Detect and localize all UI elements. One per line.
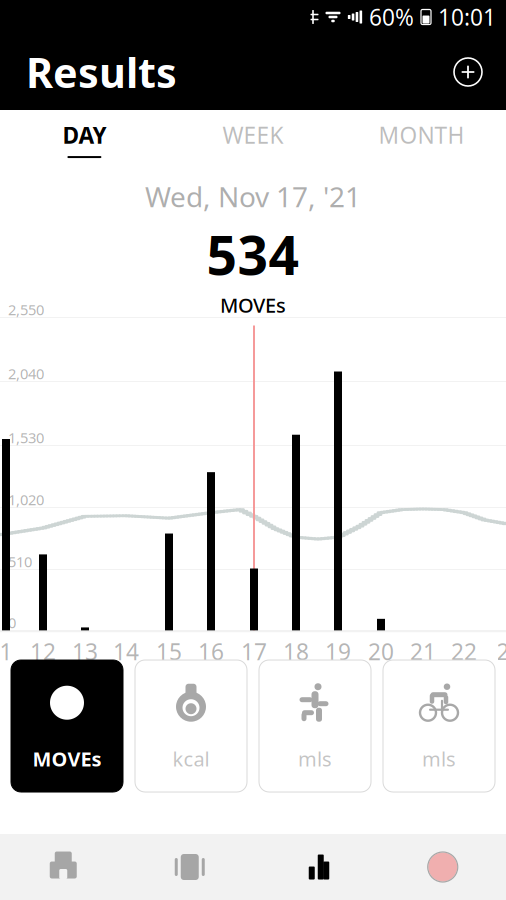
staticText: 1,020 [8,490,44,509]
staticText: WEEK [222,120,283,150]
staticText: MONTH [379,120,465,150]
staticText: mls [422,745,456,772]
staticText: 20 [368,636,394,666]
staticText: 0 [8,613,16,632]
button[interactable]: WEEK [169,110,337,168]
button[interactable]: MONTH [337,110,506,168]
button[interactable]: MOVEs [11,660,123,792]
staticText: 15 [156,636,182,666]
button[interactable]: mls [383,660,495,792]
staticText: 18 [283,636,309,666]
staticText: 19 [325,636,351,666]
staticText: 1,530 [8,428,44,447]
staticText: MOVEs [220,292,286,318]
staticText: DAY [62,120,106,150]
button[interactable]: kcal [135,660,247,792]
staticText: 13 [72,636,98,666]
button[interactable]: Results [253,834,379,900]
button[interactable]: Add [444,48,492,96]
button[interactable]: Home [0,834,126,900]
staticText: 1 [0,636,12,666]
staticText: Results [26,45,177,99]
button[interactable]: mls [259,660,371,792]
button[interactable]: Cards [126,834,253,900]
staticText: 21 [410,636,436,666]
staticText: 534 [206,219,299,290]
button[interactable]: Device [379,834,506,900]
staticText: 510 [8,552,32,571]
staticText: mls [298,745,332,772]
staticText: 10:01 [438,2,496,32]
staticText: 2,040 [8,364,44,383]
staticText: kcal [172,745,209,772]
staticText: 14 [113,636,139,666]
button[interactable]: DAY [0,110,169,168]
staticText: MOVEs [32,745,101,772]
staticText: 2 [496,636,506,666]
staticText: 12 [30,636,56,666]
staticText: 17 [241,636,267,666]
staticText: 60% [369,2,414,32]
staticText: 22 [451,636,477,666]
staticText: 2,550 [8,300,44,319]
staticText: Wed, Nov 17, '21 [145,178,361,215]
staticText: 16 [198,636,224,666]
